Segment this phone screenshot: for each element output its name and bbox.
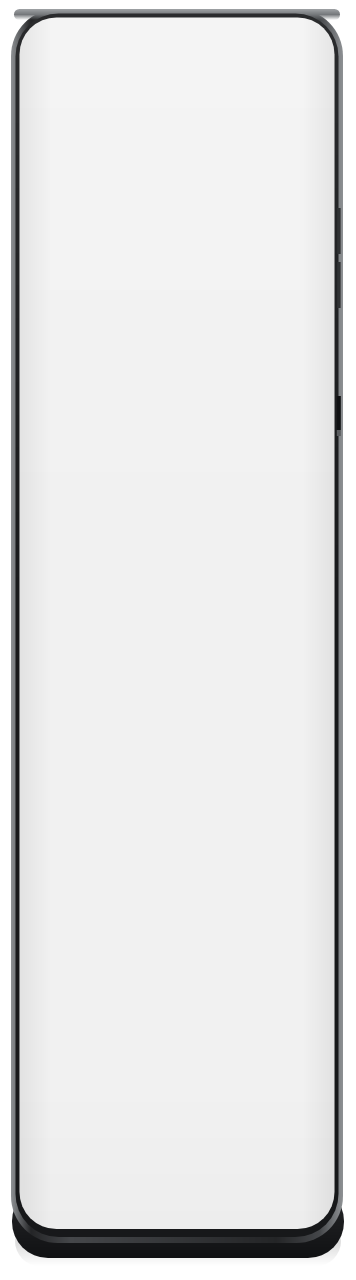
button[interactable]: Smartphone with blank screen	[0, 0, 356, 1280]
button[interactable]: Blank display	[0, 0, 356, 1280]
